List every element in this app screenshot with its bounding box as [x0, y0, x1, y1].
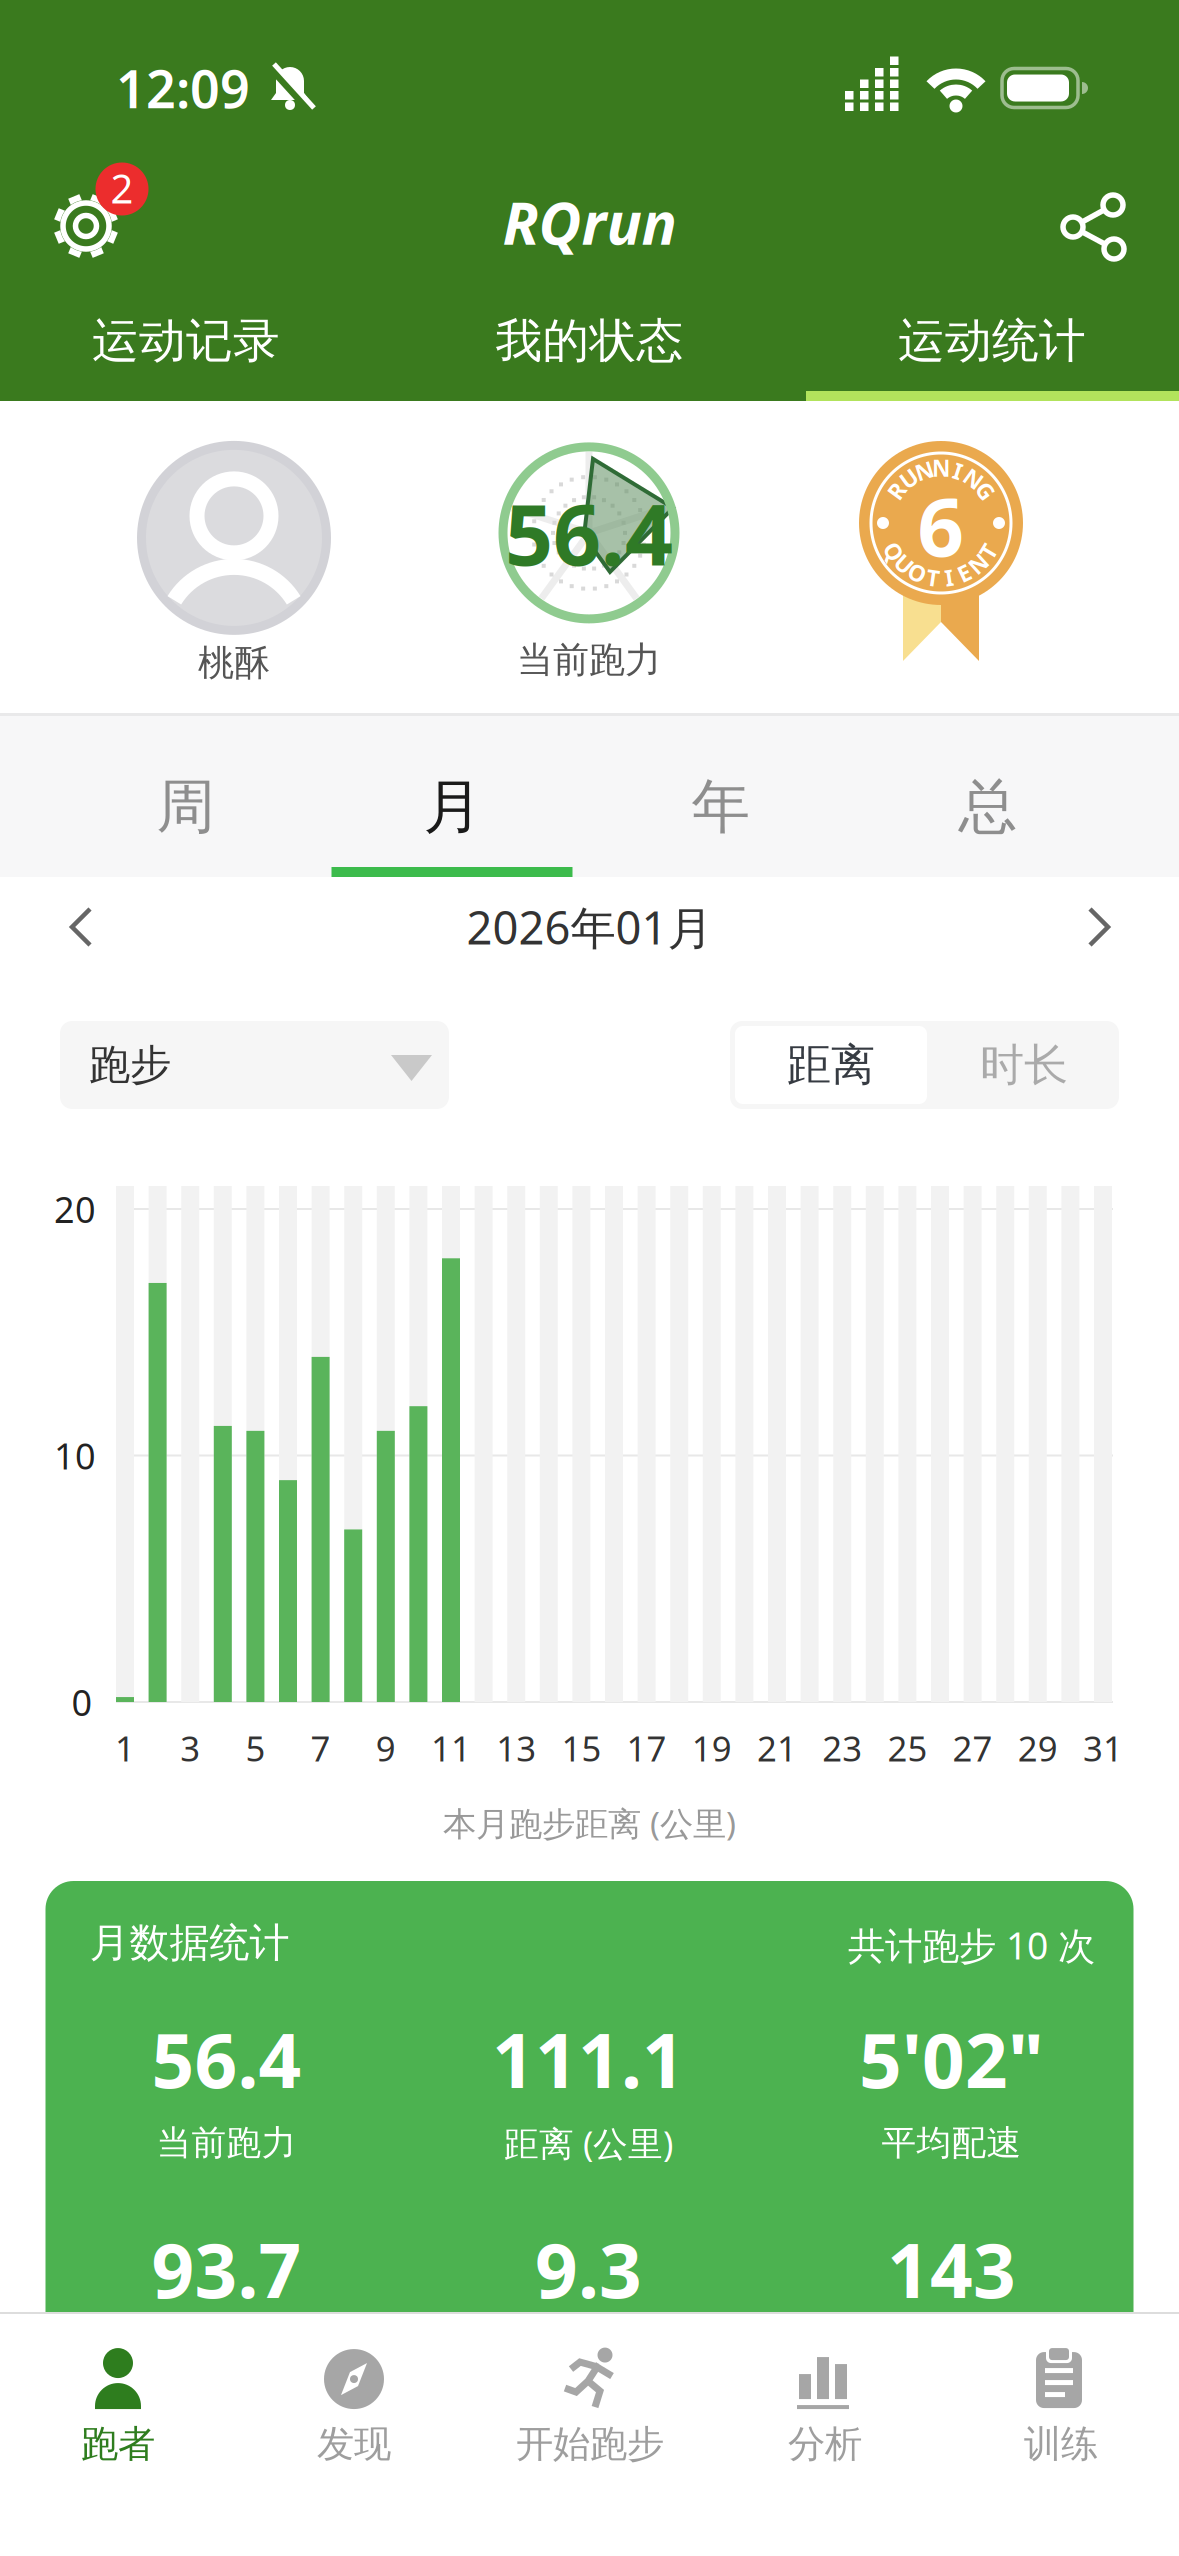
- staticText: 20: [54, 1185, 96, 1233]
- staticText: 7: [311, 1725, 331, 1771]
- staticText: 桃酥: [198, 641, 270, 685]
- staticText: N: [964, 463, 982, 494]
- staticText: 共计跑步 10 次: [848, 1920, 1095, 1970]
- staticText: R: [889, 476, 904, 506]
- staticText: 运动统计: [898, 312, 1086, 370]
- staticText: 9.3: [535, 2219, 642, 2319]
- staticText: U: [896, 549, 913, 579]
- staticText: 2: [110, 161, 133, 214]
- staticText: G: [977, 476, 993, 506]
- staticText: 平均配速: [881, 2122, 1021, 2164]
- staticText: 27: [953, 1725, 993, 1771]
- staticText: 9: [376, 1725, 396, 1771]
- staticText: I: [945, 562, 954, 592]
- staticText: 本月跑步距离 (公里): [443, 1801, 736, 1845]
- button[interactable]: 周: [53, 732, 319, 882]
- button[interactable]: 当前跑力 56.4: [498, 442, 680, 682]
- staticText: 距离: [787, 1038, 875, 1092]
- staticText: 31: [1083, 1725, 1123, 1771]
- staticText: 13: [496, 1725, 536, 1771]
- staticText: 开始跑步: [516, 2421, 664, 2467]
- staticText: 当前跑力: [156, 2122, 296, 2164]
- staticText: 12:09: [116, 53, 250, 123]
- button[interactable]: Previous month: [47, 892, 117, 962]
- staticText: 我的状态: [495, 312, 683, 370]
- staticText: 10: [54, 1432, 96, 1479]
- button[interactable]: 分析: [712, 2329, 937, 2484]
- staticText: E: [958, 558, 971, 588]
- staticText: 0: [71, 1678, 92, 1726]
- button[interactable]: Next month: [1063, 892, 1133, 962]
- button[interactable]: 发现: [241, 2329, 466, 2484]
- staticText: 5'02": [859, 2009, 1044, 2109]
- staticText: 56.4: [505, 477, 673, 589]
- staticText: 跑步: [89, 1040, 171, 1090]
- staticText: 月: [423, 771, 482, 843]
- staticText: 运动记录: [92, 312, 280, 370]
- staticText: N: [969, 549, 987, 579]
- staticText: U: [900, 463, 917, 494]
- button[interactable]: 跑者: [5, 2329, 230, 2484]
- button[interactable]: Running Quotient 6: [851, 439, 1031, 669]
- button[interactable]: 运动统计: [797, 293, 1179, 389]
- staticText: N: [932, 453, 950, 483]
- button[interactable]: 训练: [948, 2329, 1173, 2484]
- staticText: N: [915, 456, 933, 486]
- staticText: 15: [561, 1725, 601, 1771]
- button[interactable]: 开始跑步: [477, 2329, 702, 2484]
- button[interactable]: Settings: [30, 130, 190, 290]
- staticText: 56.4: [151, 2009, 301, 2109]
- staticText: 19: [692, 1725, 732, 1771]
- staticText: 17: [627, 1725, 667, 1771]
- staticText: 发现: [317, 2421, 391, 2467]
- staticText: 训练: [1024, 2421, 1098, 2467]
- staticText: 3: [180, 1725, 200, 1771]
- staticText: 时长: [980, 1038, 1068, 1092]
- staticText: 月数据统计: [89, 1918, 289, 1967]
- staticText: 总: [958, 771, 1017, 843]
- button[interactable]: 运动记录: [0, 293, 381, 389]
- staticText: 分析: [788, 2421, 862, 2467]
- staticText: RQrun: [502, 183, 676, 261]
- staticText: 距离 (公里): [504, 2120, 673, 2166]
- button[interactable]: 我的状态: [394, 293, 784, 389]
- staticText: 21: [757, 1725, 797, 1771]
- staticText: 跑者: [81, 2421, 155, 2467]
- button[interactable]: 时长: [934, 1026, 1114, 1104]
- staticText: O: [908, 558, 926, 588]
- button[interactable]: 年: [588, 732, 854, 882]
- staticText: 2026年01月: [466, 897, 712, 957]
- button[interactable]: 月: [320, 732, 586, 882]
- staticText: 143: [887, 2219, 1016, 2319]
- button[interactable]: 桃酥: [137, 441, 331, 685]
- staticText: 23: [822, 1725, 862, 1771]
- button[interactable]: Share: [1048, 182, 1138, 272]
- staticText: 年: [691, 771, 750, 843]
- staticText: 5: [245, 1725, 265, 1771]
- button[interactable]: 运动类型: 跑步: [60, 1021, 449, 1109]
- staticText: 1: [115, 1725, 135, 1771]
- staticText: I: [953, 456, 962, 486]
- staticText: 93.7: [151, 2219, 301, 2319]
- staticText: 6: [917, 471, 964, 579]
- staticText: 11: [431, 1725, 471, 1771]
- staticText: 25: [887, 1725, 927, 1771]
- staticText: 周: [156, 771, 215, 843]
- staticText: 29: [1018, 1725, 1058, 1771]
- staticText: Q: [885, 536, 903, 566]
- staticText: T: [926, 562, 939, 592]
- staticText: 111.1: [492, 2009, 685, 2109]
- button[interactable]: 距离: [735, 1026, 927, 1104]
- button[interactable]: 总: [855, 732, 1121, 882]
- staticText: 当前跑力: [517, 638, 661, 682]
- staticText: T: [982, 536, 995, 566]
